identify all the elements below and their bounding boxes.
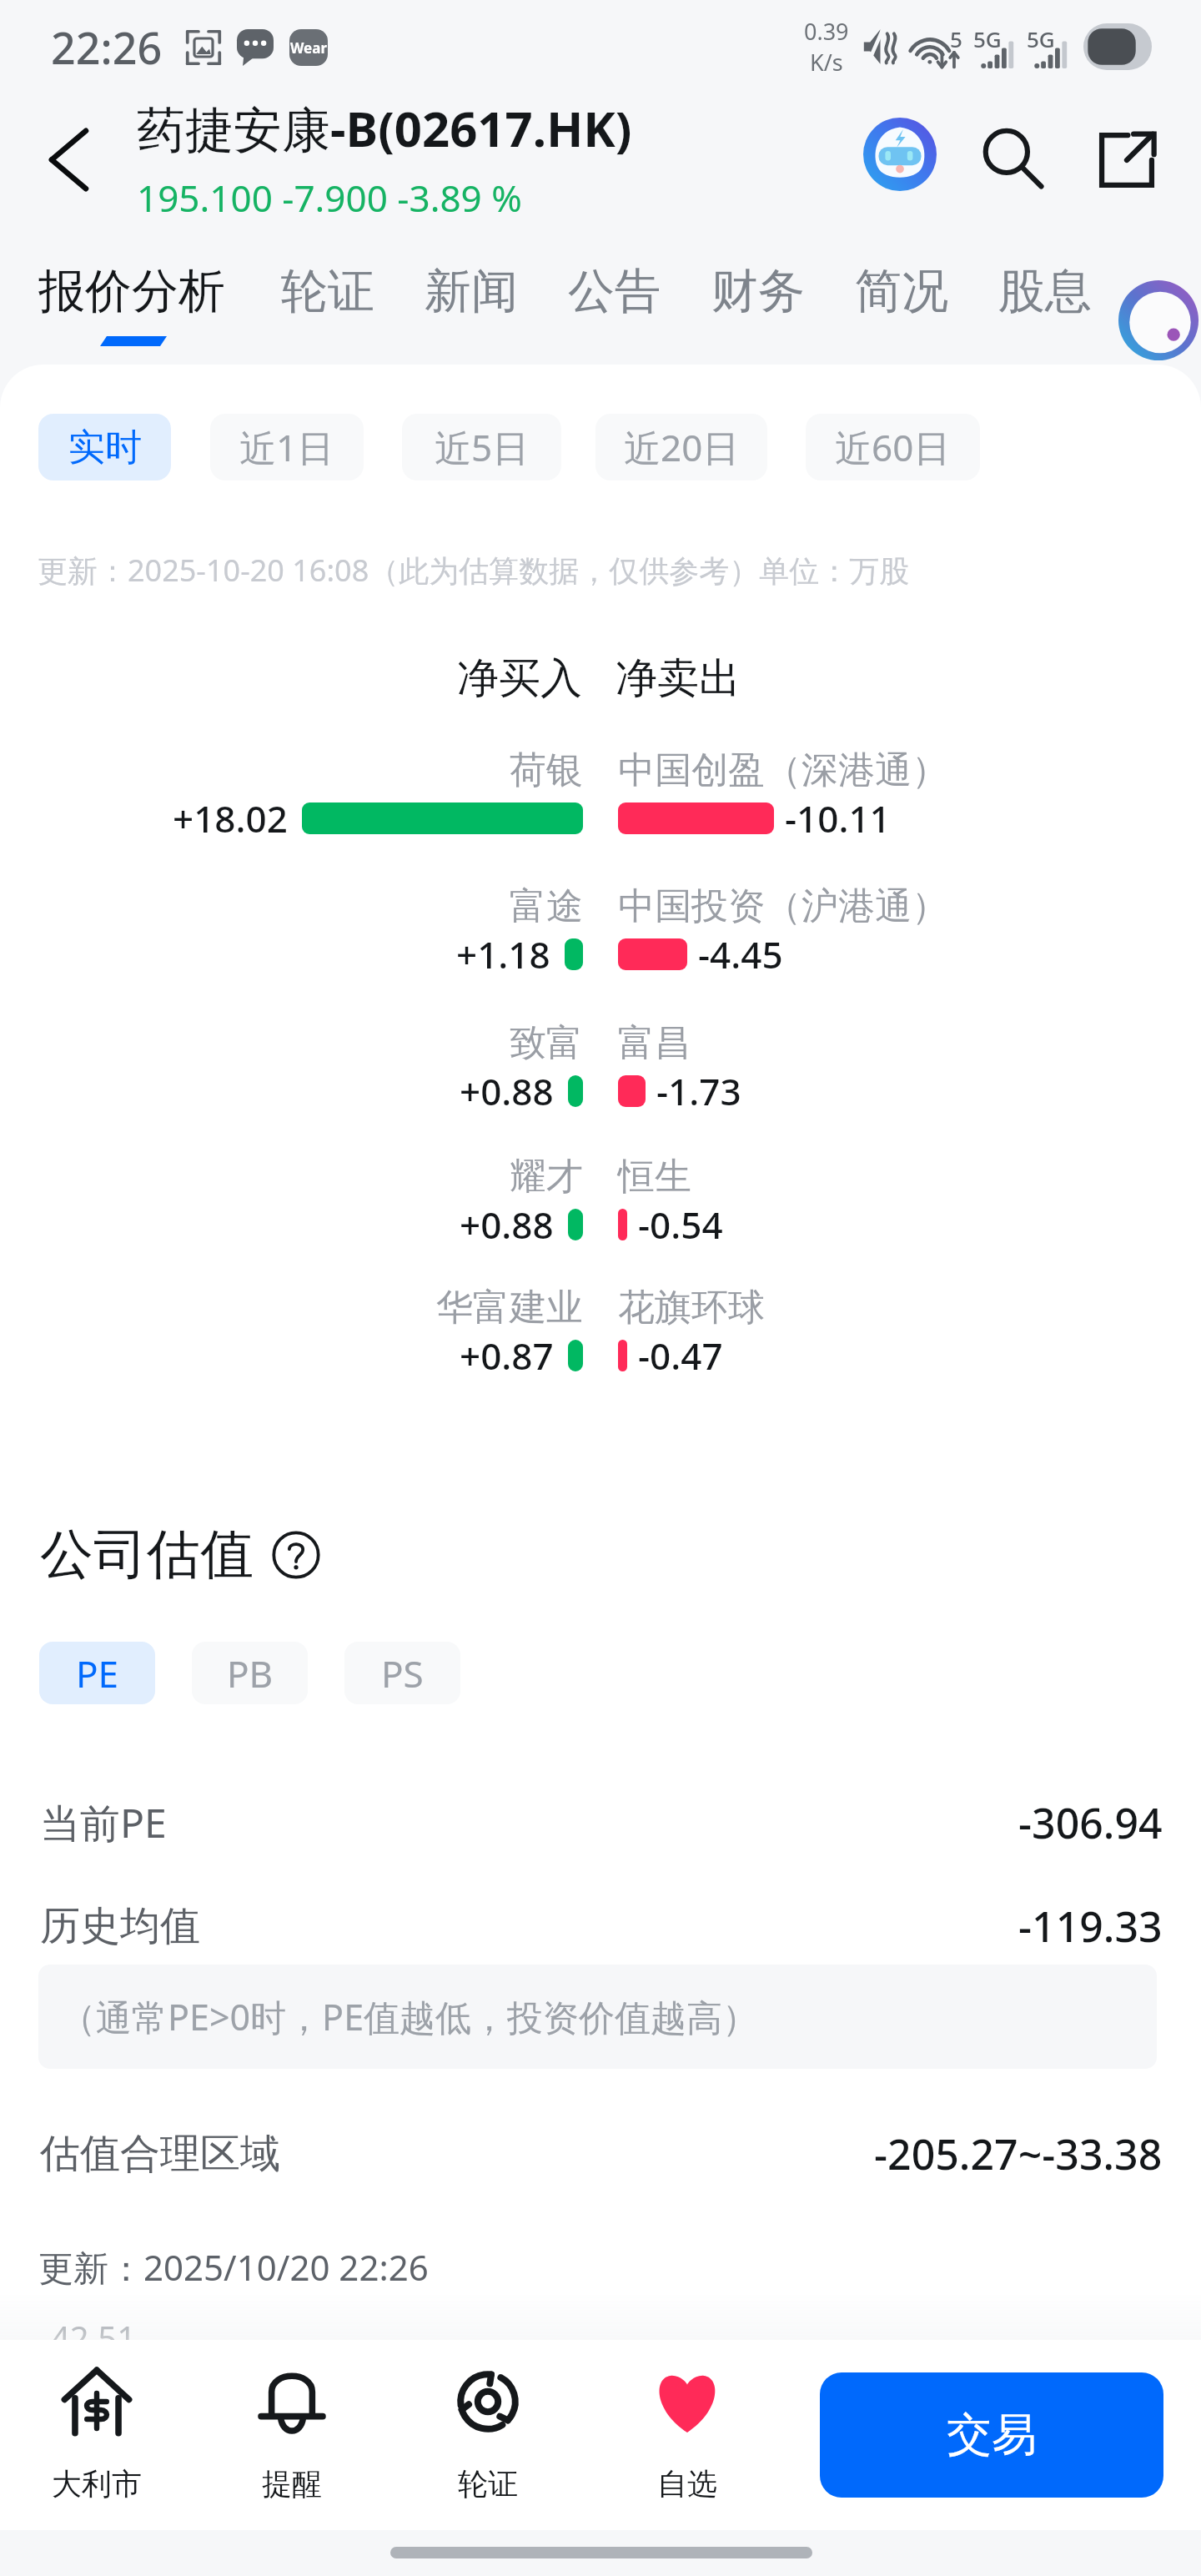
staticText: 估值合理区域 [40,2129,280,2179]
button[interactable]: Search [966,106,1062,202]
staticText: 耀才 [510,1154,583,1200]
staticText: 大利市 [52,2465,142,2503]
staticText: 5 [950,24,962,53]
button[interactable]: AI assistant [852,106,947,202]
button[interactable]: 近60日 [806,414,980,480]
staticText: 简况 [855,262,948,321]
button[interactable]: 轮证 [281,262,374,321]
staticText: 近20日 [624,422,740,472]
staticText: -119.33 [1018,1898,1163,1955]
staticText: -306.94 [1018,1794,1163,1851]
staticText: 股息 [998,262,1092,321]
staticText: 实时 [68,425,142,470]
button[interactable]: 简况 [855,262,948,321]
staticText: 轮证 [281,262,374,321]
staticText: +1.18 [456,929,550,979]
button[interactable]: 新闻 [425,262,518,321]
staticText: 致富 [510,1020,583,1066]
staticText: 财务 [711,262,805,321]
staticText: 近1日 [239,422,334,472]
staticText: 当前PE [40,1795,167,1850]
staticText: 195.100 -7.900 -3.89 % [137,173,522,223]
staticText: 恒生 [618,1154,691,1200]
button[interactable]: 轮证 [400,2367,575,2503]
staticText: -205.27~-33.38 [874,2126,1163,2182]
button[interactable]: 提醒 [204,2367,379,2503]
staticText: 近5日 [435,422,530,472]
button[interactable]: 大利市 [9,2367,184,2503]
button[interactable]: 近5日 [402,414,561,480]
staticText: 药捷安康-B(02617.HK) [137,95,632,161]
button[interactable]: 报价分析 [38,262,225,321]
staticText: 更新：2025/10/20 22:26 [38,2243,429,2291]
staticText: 历史均值 [40,1901,200,1951]
staticText: +18.02 [173,793,288,843]
staticText: K/s [810,47,843,78]
staticText: -0.54 [638,1200,723,1250]
staticText: 公司估值 [40,1521,254,1588]
staticText: PB [227,1648,274,1698]
button[interactable]: 财务 [711,262,805,321]
staticText: 公告 [568,262,661,321]
staticText: 更新：2025-10-20 16:08（此为估算数据，仅供参考）单位：万股 [38,550,910,591]
staticText: +0.87 [460,1331,554,1381]
staticText: 富昌 [618,1020,691,1066]
staticText: 新闻 [425,262,518,321]
staticText: 富途 [510,883,583,929]
staticText: -0.47 [638,1331,723,1381]
button[interactable]: Share [1078,106,1174,202]
staticText: +0.88 [460,1066,554,1116]
staticText: 中国创盈（深港通） [618,747,948,793]
button[interactable]: 自选 [600,2367,775,2503]
staticText: 交易 [947,2407,1037,2463]
staticText: Wear [290,38,328,58]
button[interactable]: AI assistant [1118,279,1201,362]
staticText: PS [381,1648,424,1698]
staticText: 5G [1027,24,1055,53]
staticText: -1.73 [656,1066,741,1116]
button[interactable]: PB [192,1642,308,1704]
button[interactable]: 公告 [568,262,661,321]
staticText: 0.39 [804,16,849,47]
staticText: 5G [973,24,1002,53]
staticText: 提醒 [262,2465,322,2503]
staticText: +0.88 [460,1200,554,1250]
button[interactable]: Back [12,114,112,214]
button[interactable]: 实时 [38,414,171,480]
button[interactable]: PS [344,1642,460,1704]
button[interactable]: PE [39,1642,155,1704]
staticText: PE [76,1648,119,1698]
button[interactable]: 近1日 [210,414,364,480]
staticText: 华富建业 [436,1285,583,1331]
staticText: 22:26 [51,18,163,77]
staticText: -4.45 [698,929,783,979]
staticText: 轮证 [458,2465,518,2503]
button[interactable]: 交易 [820,2372,1163,2498]
button[interactable]: 近20日 [595,414,767,480]
button[interactable]: 股息 [998,262,1092,321]
staticText: 自选 [657,2465,717,2503]
staticText: 近60日 [835,422,951,472]
staticText: -42.51 [40,2315,137,2340]
staticText: 净买入 [457,652,582,705]
staticText: 荷银 [510,747,583,793]
staticText: 报价分析 [38,262,225,321]
staticText: 净卖出 [616,652,741,705]
staticText: 中国投资（沪港通） [618,883,948,929]
staticText: （通常PE>0时，PE值越低，投资价值越高） [60,1992,759,2041]
staticText: -10.11 [785,793,891,843]
staticText: 花旗环球 [618,1285,765,1331]
